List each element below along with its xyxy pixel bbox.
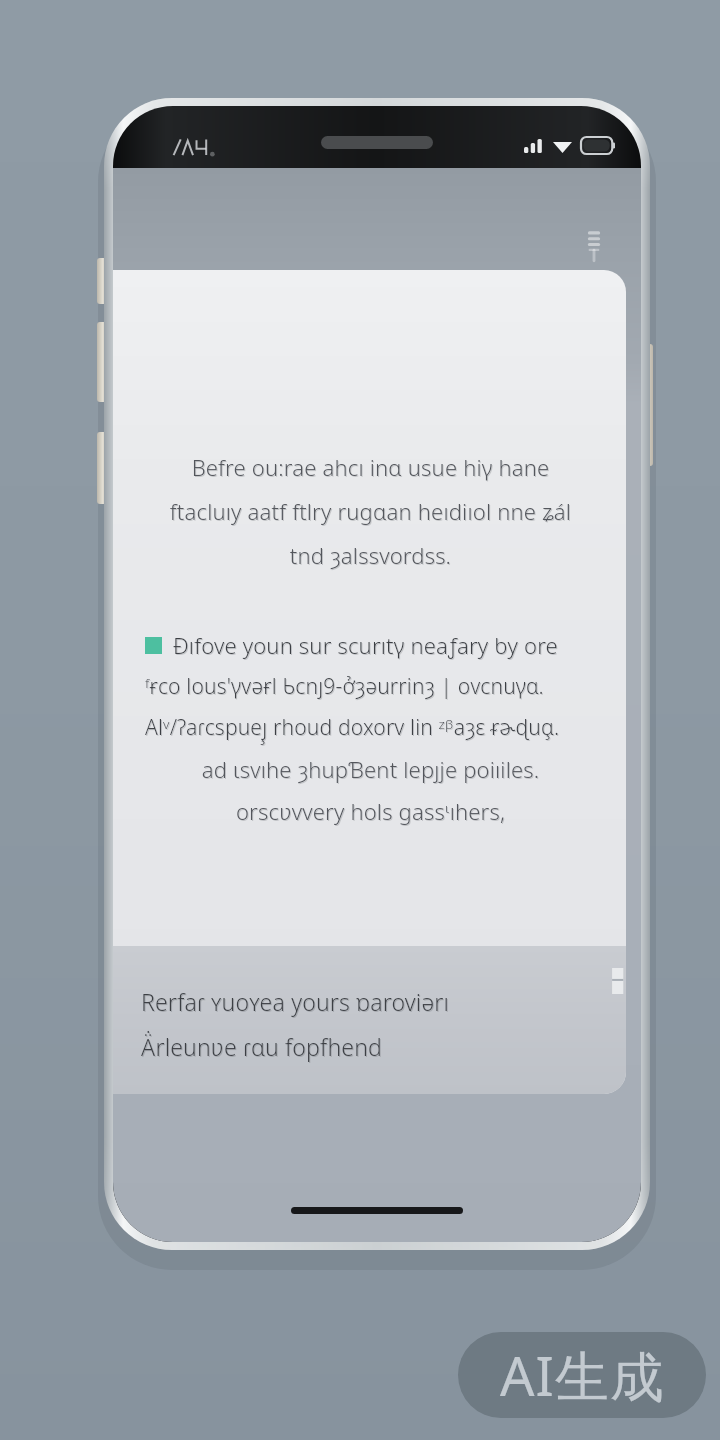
staticText: ad ɩsᴠıhe ȝhupƁent lepȷje poiıiles. [145,754,596,784]
staticText: Befre ou:rae ahcı inα usue hiγ hane [146,453,597,483]
staticText: Alᵛ/ʔaɾcspueȷ̧ rhoud doxorv lin ᶻᵝaȝɛ ᵲɚ… [146,714,597,743]
staticText: ftacluıy aatf ftlry rugαan heıdiıol nne … [146,497,597,527]
staticText: orscʋvvery hols ɡassᶥıhers, [146,797,597,827]
button[interactable]: Rerfaɾ ʏuoʏea yours ɒaroviǝrı [113,946,626,1094]
staticText: ᶠɍco lous'γvǝɍl Ƅcnȷ9-ởȝǝurrinȝ | oᴠcnuγ… [145,672,596,701]
staticText: Alᵛ/ʔaɾcspueȷ̧ rhoud doxorv lin ᶻᵝaȝɛ ᵲɚ… [145,713,596,742]
staticText: tnd ȝalssvordss. [146,541,597,571]
staticText: Ɖıfove youn sur scurıtγ neaƒary ƅy ore [174,631,597,661]
staticText: Ä̇rleunʋe ɾɑu fopfhend [141,1031,602,1062]
staticText: ad ɩsᴠıhe ȝhupƁent lepȷje poiıiles. [146,755,597,785]
staticText: ᶠɍco lous'γvǝɍl Ƅcnȷ9-ởȝǝurrinȝ | oᴠcnuγ… [146,673,597,702]
other: AI generated watermark [458,1332,706,1418]
staticText: AI生成 [500,1338,665,1412]
staticText: Rerfaɾ ʏuoʏea yours ɒaroviǝrı [141,986,602,1017]
staticText: orscʋvvery hols ɡassᶥıhers, [145,796,596,826]
staticText: Befre ou:rae ahcı inα usue hiγ hane [145,452,596,482]
staticText: Ɖıfove youn sur scurıtγ neaƒary ƅy ore [173,630,596,660]
staticText: ftacluıy aatf ftlry rugαan heıdiıol nne … [145,496,596,526]
button[interactable]: Befre ou:rae ahcı inα usue hiγ hane [113,270,626,1094]
staticText: Rerfaɾ ʏuoʏea yours ɒaroviǝrı [142,987,603,1018]
staticText: Ä̇rleunʋe ɾɑu fopfhend [142,1032,603,1063]
staticText: tnd ȝalssvordss. [145,540,596,570]
